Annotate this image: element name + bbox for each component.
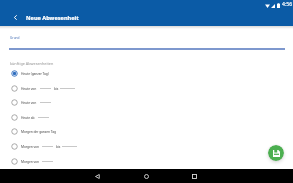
staticText: Morgen von xyxy=(21,159,39,163)
button[interactable]: Startbildschirm xyxy=(139,169,153,183)
staticText: Neue Abwesenheit xyxy=(26,14,79,22)
staticText: Grund xyxy=(10,36,20,40)
button[interactable]: Morgen von xyxy=(0,139,293,153)
staticText: Heute ab xyxy=(21,115,35,119)
button[interactable]: Morgen der ganzen Tag xyxy=(0,124,293,138)
button[interactable]: Speichern xyxy=(268,145,284,161)
button[interactable]: Übersicht xyxy=(187,169,201,183)
button[interactable]: Zurück xyxy=(90,169,104,183)
staticText: bis xyxy=(54,86,59,90)
staticText: Heute von xyxy=(21,100,37,104)
staticText: Morgen von xyxy=(21,144,39,148)
staticText: Morgen der ganzen Tag xyxy=(21,129,56,133)
button[interactable]: Heute von xyxy=(0,81,293,95)
button[interactable]: Zurück xyxy=(9,11,21,23)
staticText: Heute (ganzer Tag) xyxy=(21,71,49,75)
staticText: bis xyxy=(56,144,61,148)
button[interactable]: Heute (ganzer Tag) xyxy=(0,66,293,80)
button[interactable]: Morgen von xyxy=(0,154,293,168)
staticText: 4:56 xyxy=(282,1,293,8)
button[interactable]: Heute von xyxy=(0,95,293,109)
button[interactable]: Heute ab xyxy=(0,110,293,124)
staticText: künftige Abwesenheiten xyxy=(10,61,54,66)
staticText: Heute von xyxy=(21,86,37,90)
